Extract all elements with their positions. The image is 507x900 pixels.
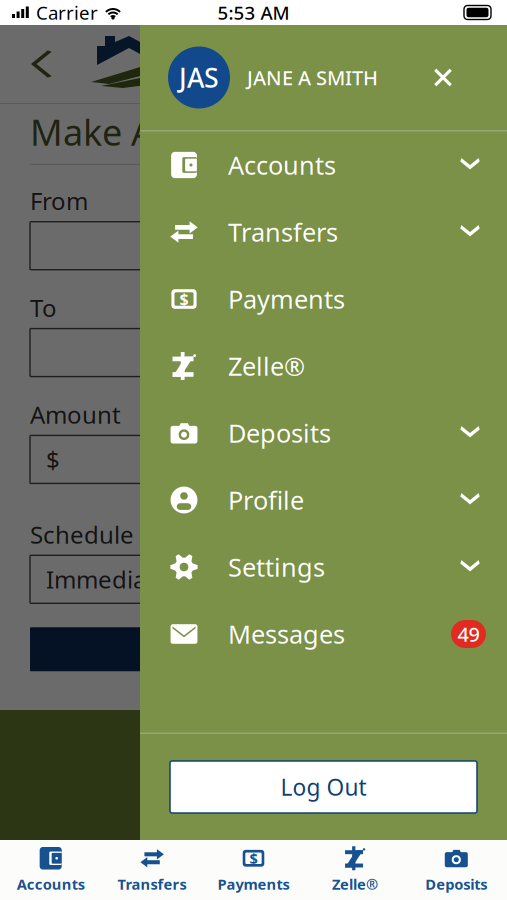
staticText: Payments [228,282,345,316]
staticText: Immediate (Today) [46,563,256,595]
staticText: Transfers [228,215,338,249]
staticText: To [30,292,57,324]
staticText: Log Out [280,772,366,802]
button[interactable]: Accounts [0,840,101,900]
button[interactable]: Messages [140,600,507,667]
staticText: $ [249,848,257,868]
staticText: Zelle® [228,349,305,383]
staticText: Schedule [30,518,134,550]
button[interactable]: Profile [140,466,507,533]
button[interactable]: Zelle® [140,332,507,399]
staticText: Payments [217,874,289,894]
button[interactable]: $ [140,265,507,332]
staticText: Amount [30,399,121,430]
button[interactable]: Log Out [170,761,477,813]
staticText: Zelle® [332,874,378,894]
staticText: Make A Transfer [30,108,301,156]
staticText: Transfers [118,874,187,894]
staticText: JAS [179,60,219,95]
button[interactable]: Zelle® [304,840,406,900]
button[interactable]: Accounts [140,131,507,198]
button[interactable]: Deposits [140,399,507,466]
staticText: 49 [457,621,479,647]
staticText: Deposits [425,874,487,894]
staticText: Deposits [228,416,331,450]
staticText: Settings [228,550,325,584]
staticText: Carrier [36,0,98,25]
staticText: Profile [228,483,304,517]
button[interactable]: Transfers [140,198,507,265]
button[interactable]: Deposits [406,840,507,900]
staticText: Messages [228,617,345,651]
staticText: $ [46,443,60,475]
staticText: From [30,185,88,217]
button[interactable]: Close menu [421,55,465,99]
button[interactable]: $ [203,840,304,900]
staticText: JANE A SMITH [247,64,378,91]
staticText: Accounts [228,148,336,182]
button[interactable]: Back [17,42,61,86]
staticText: Accounts [17,874,85,894]
button[interactable]: Settings [140,533,507,600]
staticText: 5:53 AM [217,0,289,25]
button[interactable]: Transfers [101,840,203,900]
staticText: $ [179,288,188,310]
